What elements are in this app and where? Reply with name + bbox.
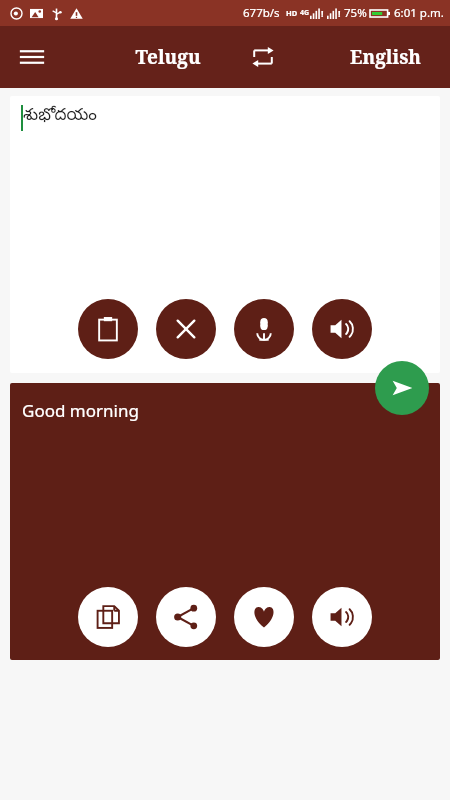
button[interactable]: Favorite [234, 587, 294, 647]
staticText: 75% [344, 5, 367, 21]
button[interactable]: Speak [312, 299, 372, 359]
button[interactable]: Copy [78, 587, 138, 647]
button[interactable]: Swap languages [241, 35, 285, 79]
button[interactable]: Telugu [118, 33, 218, 81]
button[interactable]: Share [156, 587, 216, 647]
staticText: Good morning [22, 399, 139, 422]
button[interactable]: Menu [8, 33, 56, 81]
staticText: Telugu [135, 44, 201, 70]
staticText: 6:01 p.m. [394, 5, 444, 21]
staticText: 4G [300, 8, 310, 18]
staticText: English [350, 44, 421, 70]
staticText: HD [286, 8, 298, 18]
staticText: 677b/s [243, 5, 280, 21]
staticText: శుభోదయం [23, 105, 97, 128]
button[interactable]: Speak [312, 587, 372, 647]
button[interactable]: English [330, 33, 440, 81]
staticText: ! [321, 7, 324, 19]
button[interactable]: Translate [375, 361, 429, 415]
button[interactable]: Voice input [234, 299, 294, 359]
button[interactable]: Paste [78, 299, 138, 359]
staticText: ! [338, 7, 341, 19]
button[interactable]: Clear [156, 299, 216, 359]
